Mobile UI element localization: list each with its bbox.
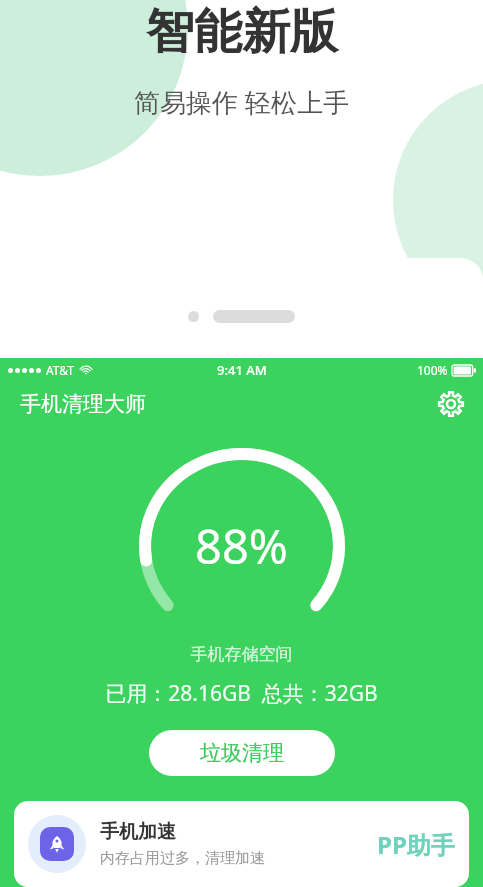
staticText: 9:41 AM — [217, 361, 267, 379]
staticText: 手机清理大师 — [20, 391, 146, 417]
staticText: 手机存储空间 — [0, 644, 483, 665]
staticText: 100% — [417, 362, 448, 378]
button[interactable]: 垃圾清理 — [149, 730, 335, 776]
staticText: 垃圾清理 — [200, 740, 284, 766]
button[interactable]: 手机加速 — [14, 801, 469, 887]
staticText: 智能新版 — [146, 2, 338, 62]
staticText: AT&T — [46, 362, 74, 378]
staticText: 内存占用过多，清理加速 — [100, 849, 265, 868]
staticText: PP助手 — [377, 828, 455, 861]
button[interactable]: Settings — [431, 384, 471, 424]
button[interactable] — [188, 311, 199, 322]
button[interactable] — [213, 310, 295, 323]
staticText: 简易操作 轻松上手 — [134, 84, 349, 120]
staticText: 88% — [195, 514, 288, 578]
staticText: 已用：28.16GB 总共：32GB — [0, 679, 483, 708]
staticText: 手机加速 — [100, 820, 176, 844]
